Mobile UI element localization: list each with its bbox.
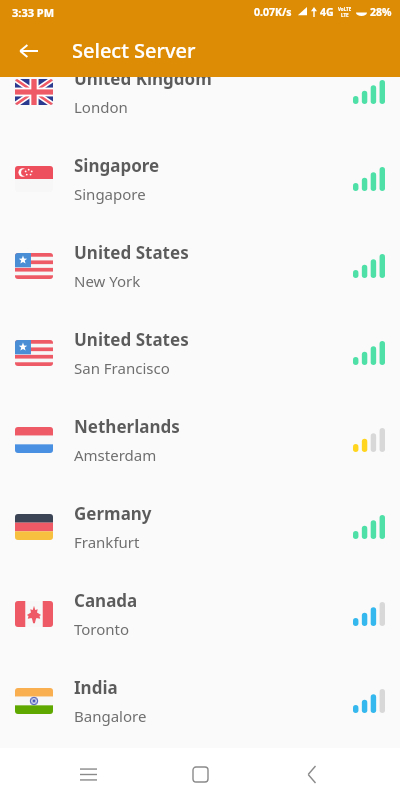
staticText: Canada (74, 589, 138, 612)
button[interactable]: United States (0, 222, 400, 309)
staticText: VoLTE (338, 6, 352, 12)
button[interactable]: Back (288, 750, 336, 798)
staticText: Bangalore (74, 706, 147, 726)
button[interactable]: India (0, 657, 400, 744)
staticText: United Kingdom (74, 67, 212, 90)
button[interactable]: United Kingdom (0, 48, 400, 135)
staticText: India (74, 676, 118, 699)
staticText: 3:33 PM (12, 5, 55, 20)
staticText: 4G (320, 5, 334, 19)
staticText: Singapore (74, 154, 160, 177)
staticText: Singapore (74, 184, 146, 204)
button[interactable]: Recents (64, 750, 112, 798)
staticText: Netherlands (74, 415, 180, 438)
staticText: San Francisco (74, 358, 170, 378)
button[interactable]: Singapore (0, 135, 400, 222)
staticText: London (74, 97, 128, 117)
staticText: Select Server (72, 37, 196, 64)
button[interactable]: Back (9, 31, 49, 71)
staticText: Toronto (74, 619, 130, 639)
staticText: LTE (341, 12, 349, 18)
button[interactable]: Canada (0, 570, 400, 657)
button[interactable]: United States (0, 309, 400, 396)
staticText: 0.07K/s (254, 5, 292, 19)
button[interactable]: Germany (0, 483, 400, 570)
staticText: Frankfurt (74, 532, 140, 552)
button[interactable]: Netherlands (0, 396, 400, 483)
staticText: 28% (370, 5, 392, 19)
staticText: Amsterdam (74, 445, 157, 465)
staticText: New York (74, 271, 141, 291)
staticText: United States (74, 328, 189, 351)
staticText: United States (74, 241, 189, 264)
staticText: Germany (74, 502, 152, 525)
button[interactable]: Home (176, 750, 224, 798)
